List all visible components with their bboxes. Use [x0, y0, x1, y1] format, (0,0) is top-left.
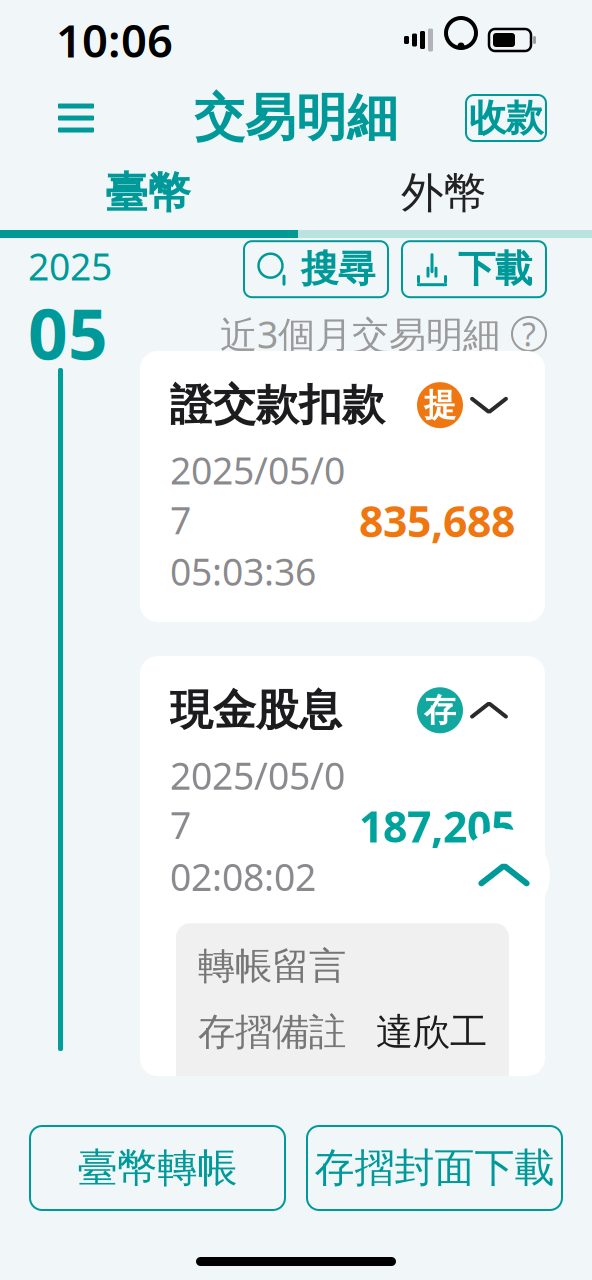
staticText: 證交款扣款	[170, 379, 385, 431]
button[interactable]: 搜尋	[244, 241, 388, 297]
button[interactable]: 說明	[512, 317, 546, 351]
staticText: 轉帳留言	[198, 943, 346, 989]
staticText: 2025/05/07	[170, 445, 345, 544]
staticText: 05:03:36	[170, 546, 316, 596]
staticText: 存摺封面下載	[314, 1143, 554, 1192]
staticText: 外幣	[401, 167, 487, 219]
staticText: 帳號	[198, 1144, 272, 1190]
staticText: 近3個月交易明細	[220, 309, 500, 359]
staticText: 下載	[458, 246, 532, 292]
button[interactable]: 現金股息	[140, 656, 545, 901]
button[interactable]: 臺幣	[0, 156, 296, 230]
button[interactable]: 臺幣轉帳	[30, 1126, 285, 1210]
button[interactable]: 下載	[402, 241, 546, 297]
staticText: 187,205	[359, 797, 515, 854]
staticText: 臺幣轉帳	[77, 1143, 237, 1192]
button[interactable]: 選單	[46, 88, 106, 148]
staticText: 臺幣	[105, 167, 191, 219]
staticText: 2025	[28, 241, 112, 291]
staticText: 2025/05/07	[170, 750, 345, 850]
staticText: 05	[28, 287, 108, 379]
staticText: 02:08:02	[170, 852, 316, 901]
staticText: 收款	[469, 95, 543, 141]
staticText: 達欣工	[376, 1009, 487, 1055]
staticText: 10:06	[56, 10, 173, 70]
staticText: 交易明細	[194, 87, 398, 149]
staticText: 存摺備註	[198, 1009, 346, 1055]
button[interactable]: 收款	[466, 95, 546, 141]
button[interactable]: 存摺封面下載	[307, 1126, 562, 1210]
staticText: 提	[424, 385, 456, 425]
staticText: 現金股息	[170, 684, 342, 736]
staticText: 存	[424, 691, 456, 730]
staticText: ?	[522, 313, 536, 355]
staticText: 搜尋	[301, 246, 375, 292]
button[interactable]: 證交款扣款	[140, 351, 545, 622]
staticText: 835,688	[359, 492, 515, 549]
button[interactable]: 外幣	[296, 156, 592, 230]
button[interactable]: 回到頂端	[458, 829, 550, 921]
